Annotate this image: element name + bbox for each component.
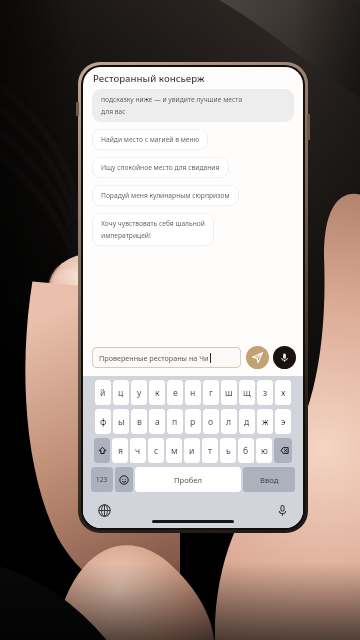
button[interactable]: х [275,380,291,405]
button[interactable] [94,438,110,463]
button[interactable]: в [131,409,147,434]
staticText: й [100,387,106,399]
staticText: Хочу чувствовать себя шальной императриц… [101,219,205,240]
button[interactable]: Порадуй меня кулинарным сюрпризом [92,185,239,206]
staticText: э [281,416,286,428]
button[interactable]: подсказку ниже — и увидите лучшие места … [92,89,294,122]
staticText: у [137,387,142,399]
staticText: ф [100,416,107,428]
button[interactable]: э [275,409,291,434]
button[interactable]: м [166,438,182,463]
button[interactable]: Сменить язык [95,501,113,519]
staticText: о [208,416,214,428]
button[interactable]: Голосовой ввод [273,346,296,369]
staticText: ю [261,445,268,457]
staticText: в [137,416,142,428]
button[interactable]: о [203,409,219,434]
button[interactable]: Ищу спокойное место для свидания [92,157,229,178]
button[interactable]: б [238,438,254,463]
button[interactable]: щ [239,380,255,405]
button[interactable]: й [95,380,111,405]
staticText: з [263,387,268,399]
button[interactable]: а [149,409,165,434]
staticText: Ищу спокойное место для свидания [101,163,220,172]
staticText: ч [135,445,141,457]
button[interactable]: р [185,409,201,434]
staticText: п [172,416,178,428]
staticText: щ [243,387,251,399]
staticText: Пробел [174,475,202,485]
staticText: я [118,445,123,457]
staticText: подсказку ниже — и увидите лучшие места … [101,95,243,116]
button[interactable]: е [167,380,183,405]
button[interactable]: ж [257,409,273,434]
staticText: с [154,445,159,457]
staticText: Проверенные рестораны на Чи [99,353,209,363]
button[interactable]: Ввод [243,467,295,492]
button[interactable]: т [202,438,218,463]
button[interactable]: ю [256,438,272,463]
staticText: г [209,387,213,399]
button[interactable]: я [112,438,128,463]
button[interactable]: Пробел [135,467,241,492]
staticText: и [189,445,195,457]
staticText: е [173,387,178,399]
button[interactable]: н [185,380,201,405]
button[interactable]: Проверенные рестораны на Чи [92,347,241,368]
staticText: ц [118,387,124,399]
button[interactable]: д [239,409,255,434]
button[interactable]: Отправить [246,346,269,369]
staticText: Ввод [260,475,279,485]
staticText: Найди место с магией в меню [101,135,199,144]
staticText: ж [262,416,269,428]
button[interactable]: Диктовка [273,501,291,519]
button[interactable]: п [167,409,183,434]
staticText: ы [118,416,125,428]
button[interactable]: у [131,380,147,405]
button[interactable] [115,467,133,492]
button[interactable]: ф [95,409,111,434]
staticText: ь [226,445,231,457]
button[interactable]: ц [113,380,129,405]
staticText: р [190,416,196,428]
staticText: х [281,387,286,399]
button[interactable]: ш [221,380,237,405]
button[interactable]: Хочу чувствовать себя шальной императриц… [92,213,214,246]
button[interactable]: з [257,380,273,405]
staticText: л [226,416,232,428]
staticText: а [155,416,160,428]
staticText: Порадуй меня кулинарным сюрпризом [101,191,230,200]
staticText: Ресторанный консьерж [93,72,205,85]
staticText: ш [225,387,233,399]
button[interactable]: 123 [91,467,113,492]
button[interactable]: ы [113,409,129,434]
staticText: н [190,387,196,399]
button[interactable]: с [148,438,164,463]
button[interactable]: г [203,380,219,405]
staticText: м [171,445,178,457]
button[interactable]: и [184,438,200,463]
button[interactable]: ч [130,438,146,463]
button[interactable]: ь [220,438,236,463]
button[interactable]: л [221,409,237,434]
staticText: д [244,416,250,428]
button[interactable] [274,438,292,463]
button[interactable]: Найди место с магией в меню [92,129,208,150]
staticText: б [243,445,249,457]
staticText: 123 [96,475,108,484]
staticText: к [155,387,160,399]
button[interactable]: к [149,380,165,405]
staticText: т [208,445,212,457]
